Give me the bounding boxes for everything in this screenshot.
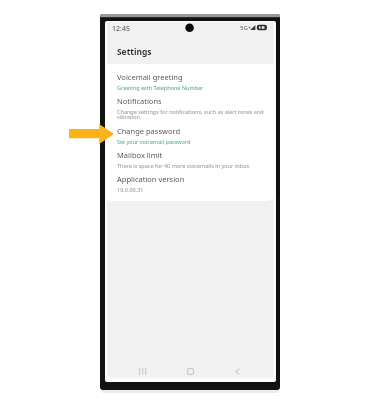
staticText: Change password — [117, 126, 181, 136]
button[interactable]: Recent apps — [132, 361, 153, 382]
button[interactable]: Notifications — [105, 93, 274, 124]
button[interactable]: Mailbox limit — [105, 147, 274, 172]
button[interactable]: Change password — [105, 123, 274, 148]
staticText: 12:45 — [112, 24, 130, 34]
button[interactable]: Application version — [105, 171, 274, 196]
button[interactable]: Back — [227, 361, 248, 382]
staticText: Set your voicemail password — [117, 138, 191, 145]
staticText: Greeting with Telephone Number — [117, 84, 204, 91]
button[interactable]: Home — [180, 361, 201, 382]
staticText: Voicemail greeting — [117, 72, 183, 82]
staticText: There is space for 40 more voicemails in… — [117, 162, 250, 169]
staticText: 19.0.00.31 — [117, 186, 144, 193]
staticText: Notifications — [117, 96, 162, 106]
staticText: Application version — [117, 174, 185, 184]
staticText: 5G+ — [240, 24, 252, 32]
staticText: Mailbox limit — [117, 150, 163, 160]
staticText: Settings — [117, 46, 152, 57]
staticText: Change settings for notifications, such … — [117, 108, 265, 121]
button[interactable]: Voicemail greeting — [105, 69, 274, 94]
